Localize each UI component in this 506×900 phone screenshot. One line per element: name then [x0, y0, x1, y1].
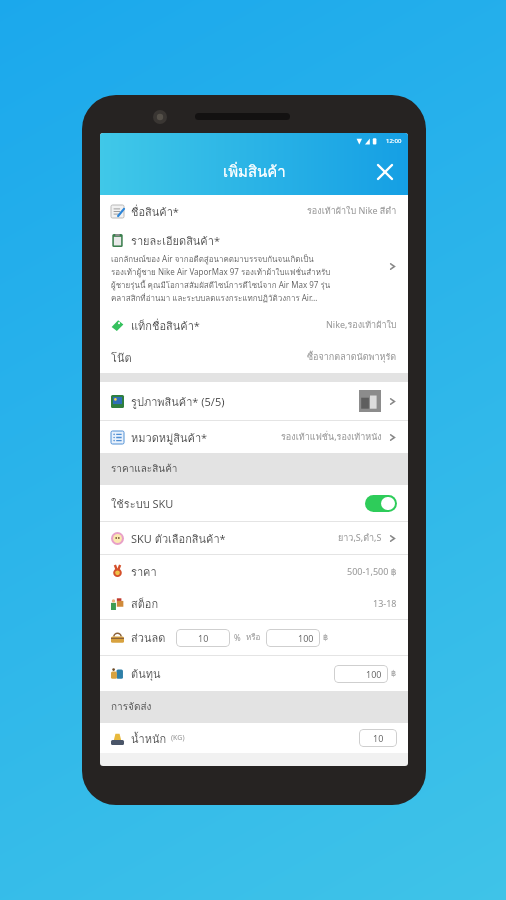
- button[interactable]: ต้นทุน: [100, 656, 408, 691]
- button[interactable]: 100: [334, 665, 388, 683]
- staticText: คลาสสิกที่อ่านมา และระบบลดแรงกระแทกปฏิวั…: [111, 292, 318, 305]
- staticText: 100: [366, 668, 382, 680]
- staticText: 12:00: [386, 137, 402, 145]
- staticText: ใช้ระบบ SKU: [111, 495, 174, 512]
- staticText: แท็กชื่อสินค้า*: [131, 317, 200, 334]
- button[interactable]: 100: [266, 629, 320, 647]
- staticText: เพิ่มสินค้า: [223, 160, 286, 184]
- staticText: ผู้ชายรุ่นนี้ คุณมีโอกาสสัมผัสดีไซน์การด…: [111, 279, 331, 292]
- staticText: รองเท้าผ้าใบ Nike สีดำ: [307, 204, 397, 218]
- button[interactable]: แท็กชื่อสินค้า*: [100, 309, 408, 341]
- staticText: ราคา: [131, 563, 157, 580]
- button[interactable]: ใช้ระบบ SKU: [100, 485, 408, 521]
- other: Open: [388, 262, 397, 271]
- other: Open: [388, 397, 397, 406]
- button[interactable]: 10: [359, 729, 397, 747]
- staticText: (KG): [171, 733, 185, 743]
- staticText: หมวดหมู่สินค้า*: [131, 429, 208, 446]
- button[interactable]: ชื่อสินค้า*: [100, 195, 408, 227]
- staticText: ส่วนลด: [131, 629, 166, 646]
- staticText: ราคาและสินค้า: [111, 461, 178, 477]
- button[interactable]: การจัดส่ง: [100, 691, 408, 723]
- staticText: %: [234, 632, 241, 643]
- staticText: โน๊ต: [111, 349, 132, 366]
- staticText: 100: [298, 632, 314, 644]
- staticText: ฿: [323, 633, 329, 642]
- staticText: รายละเอียดสินค้า*: [131, 232, 220, 249]
- staticText: ต้นทุน: [131, 665, 161, 682]
- staticText: น้ำหนัก: [131, 730, 167, 747]
- staticText: สต็อก: [131, 595, 159, 612]
- button[interactable]: รูปภาพสินค้า* (5/5): [100, 382, 408, 420]
- button[interactable]: หมวดหมู่สินค้า*: [100, 421, 408, 453]
- staticText: เอกลักษณ์ของ Air จากอดีตสู่อนาคตมาบรรจบก…: [111, 253, 314, 266]
- staticText: ซื้อจากตลาดนัดพาหุรัด: [307, 350, 397, 364]
- staticText: ชื่อสินค้า*: [131, 203, 179, 220]
- button[interactable]: SKU ตัวเลือกสินค้า*: [100, 522, 408, 554]
- staticText: Nike,รองเท้าผ้าใบ: [326, 318, 397, 332]
- button[interactable]: 10: [176, 629, 230, 647]
- staticText: SKU ตัวเลือกสินค้า*: [131, 530, 226, 547]
- staticText: 500-1,500 ฿: [347, 565, 397, 577]
- staticText: รูปภาพสินค้า* (5/5): [131, 393, 225, 410]
- other: Open: [388, 534, 397, 543]
- staticText: 10: [198, 632, 209, 644]
- button[interactable]: ราคา: [100, 555, 408, 587]
- button[interactable]: รายละเอียดสินค้า*: [100, 227, 408, 309]
- button[interactable]: สต็อก: [100, 587, 408, 619]
- button[interactable]: น้ำหนัก: [100, 723, 408, 753]
- button[interactable]: โน๊ต: [100, 341, 408, 373]
- staticText: ฿: [391, 669, 397, 678]
- staticText: ยาว,S,ดำ,S: [338, 531, 382, 545]
- staticText: 10: [373, 732, 384, 744]
- button[interactable]: ส่วนลด: [100, 620, 408, 655]
- staticText: รองเท้าแฟชั่น,รองเท้าหนัง: [281, 430, 382, 444]
- staticText: รองเท้าผู้ชาย Nike Air VaporMax 97 รองเท…: [111, 266, 331, 279]
- button[interactable]: Close: [372, 159, 398, 185]
- staticText: การจัดส่ง: [111, 699, 152, 715]
- staticText: หรือ: [246, 631, 261, 644]
- staticText: 13-18: [373, 597, 397, 609]
- button[interactable]: ราคาและสินค้า: [100, 453, 408, 485]
- other: Open: [388, 433, 397, 442]
